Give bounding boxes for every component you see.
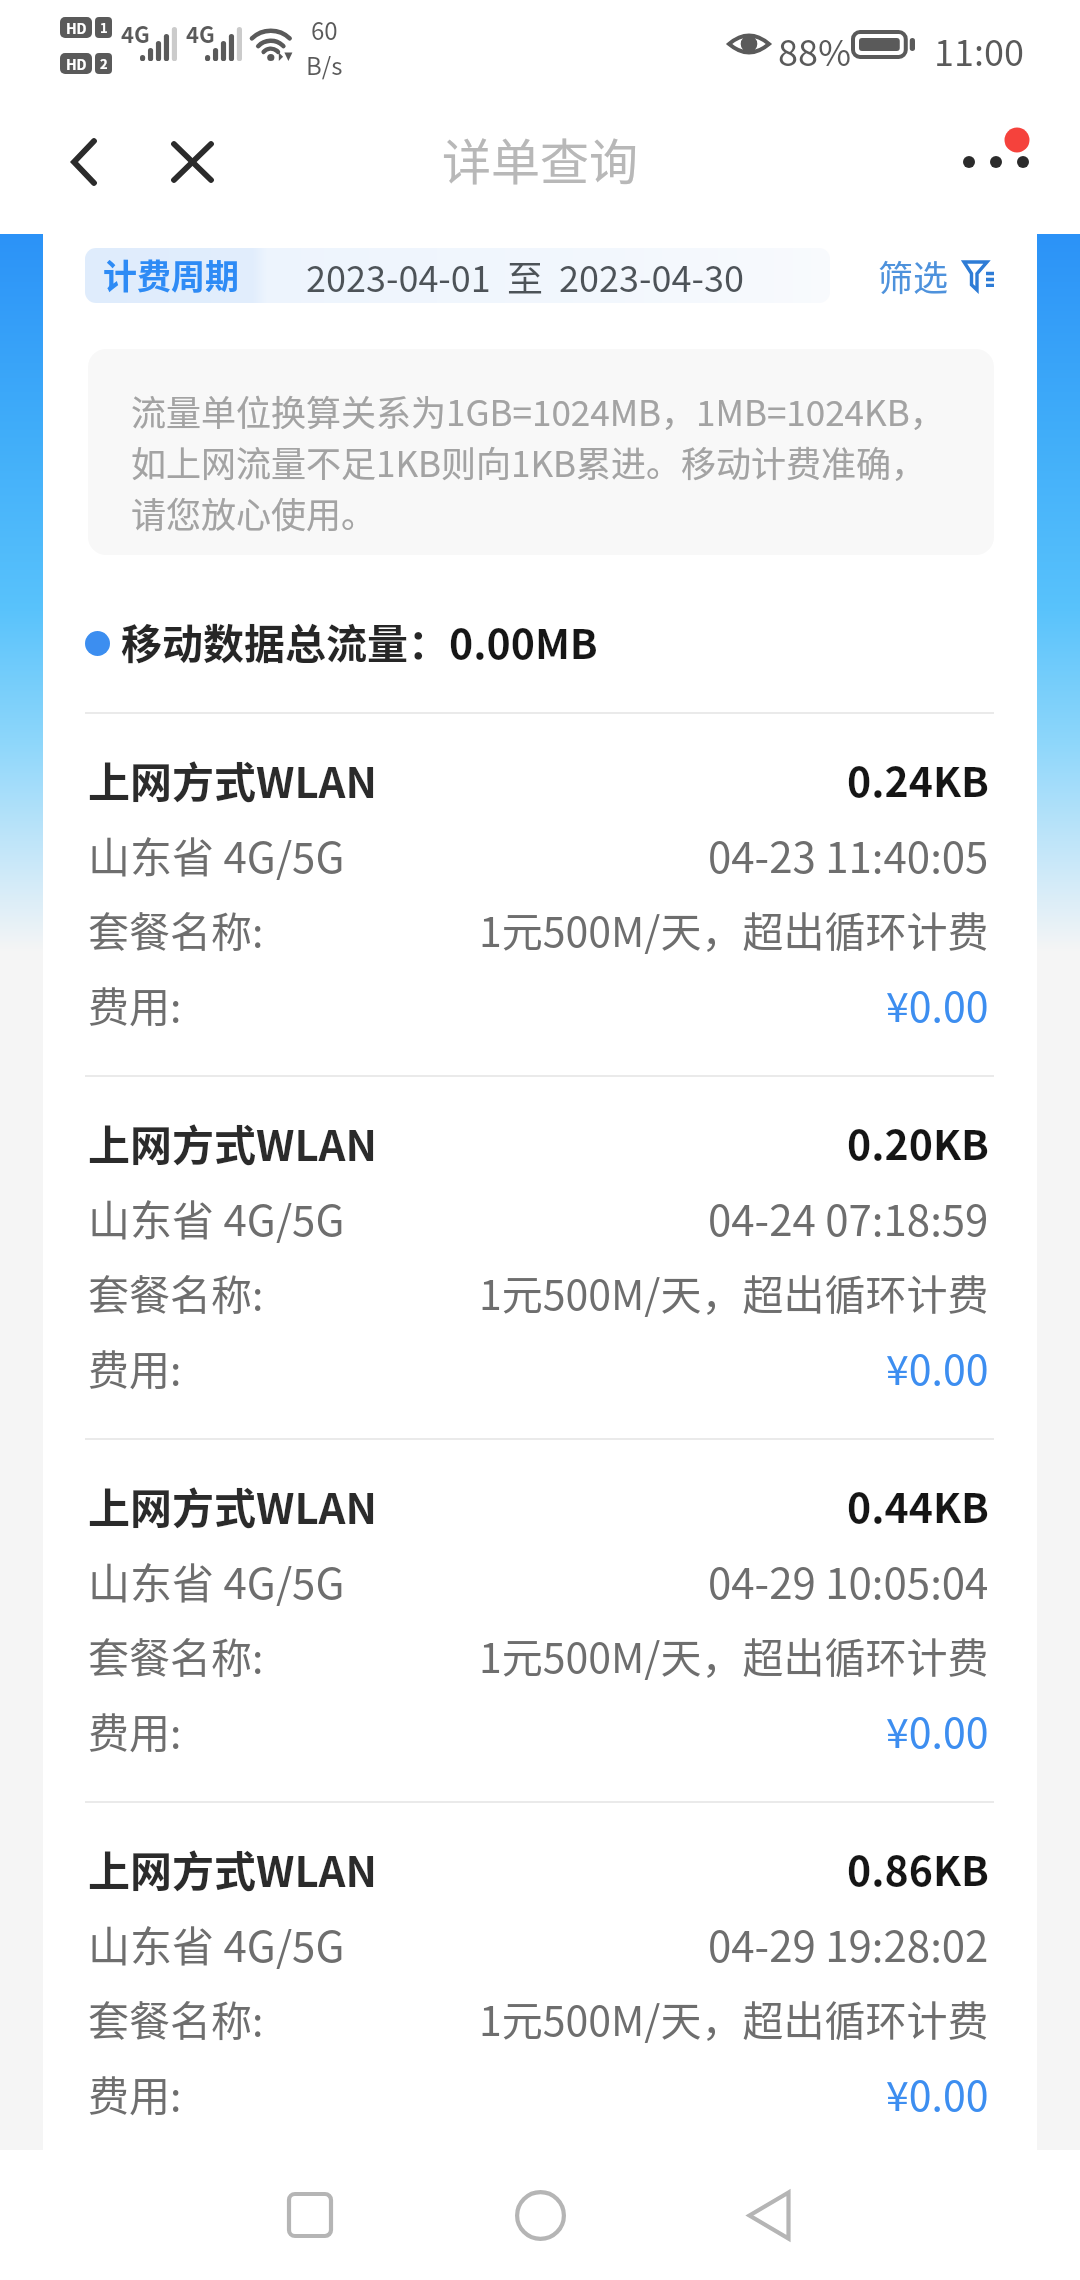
staticText: 套餐名称: bbox=[88, 1625, 264, 1681]
button[interactable]: 筛选 bbox=[878, 248, 995, 303]
staticText: 4G bbox=[186, 17, 215, 49]
staticText: 04-29 19:28:02 bbox=[708, 1913, 989, 1969]
button[interactable]: Recent apps bbox=[250, 2155, 370, 2275]
staticText: 如上网流量不足1KB则向1KB累进。移动计费准确， bbox=[131, 436, 927, 487]
staticText: 上网方式WLAN bbox=[88, 1475, 377, 1531]
staticText: 1元500M/天，超出循环计费 bbox=[479, 899, 989, 955]
staticText: ¥0.00 bbox=[886, 974, 989, 1030]
staticText: 详单查询 bbox=[442, 123, 639, 194]
staticText: 4G bbox=[121, 17, 150, 49]
staticText: 0.20KB bbox=[847, 1112, 989, 1168]
staticText: 1元500M/天，超出循环计费 bbox=[479, 1262, 989, 1318]
staticText: 1元500M/天，超出循环计费 bbox=[479, 1988, 989, 2044]
staticText: HD bbox=[66, 18, 87, 38]
staticText: 山东省 4G/5G bbox=[88, 824, 345, 880]
staticText: 0.44KB bbox=[847, 1475, 989, 1531]
staticText: 60 bbox=[311, 12, 338, 47]
button[interactable]: 上网方式WLAN bbox=[43, 1440, 1037, 1801]
staticText: 1元500M/天，超出循环计费 bbox=[479, 1625, 989, 1681]
staticText: 上网方式WLAN bbox=[88, 1838, 377, 1894]
staticText: B/s bbox=[306, 47, 343, 82]
button[interactable]: 上网方式WLAN bbox=[43, 1077, 1037, 1438]
staticText: 上网方式WLAN bbox=[88, 1112, 377, 1168]
staticText: 04-29 10:05:04 bbox=[708, 1550, 989, 1606]
staticText: 2023-04-01 至 2023-04-30 bbox=[306, 250, 744, 302]
staticText: 费用: bbox=[88, 1700, 182, 1756]
button[interactable]: Home bbox=[480, 2155, 600, 2275]
staticText: 0.24KB bbox=[847, 749, 989, 805]
staticText: ¥0.00 bbox=[886, 2063, 989, 2119]
button[interactable]: 上网方式WLAN bbox=[43, 714, 1037, 1075]
staticText: 费用: bbox=[88, 2063, 182, 2119]
staticText: 山东省 4G/5G bbox=[88, 1913, 345, 1969]
staticText: 计费周期 bbox=[103, 250, 239, 299]
staticText: ¥0.00 bbox=[886, 1337, 989, 1393]
staticText: 04-24 07:18:59 bbox=[708, 1187, 989, 1243]
staticText: 移动数据总流量： bbox=[121, 611, 449, 665]
staticText: 费用: bbox=[88, 974, 182, 1030]
staticText: 流量单位换算关系为1GB=1024MB，1MB=1024KB， bbox=[131, 385, 945, 436]
button[interactable]: Back bbox=[709, 2155, 829, 2275]
button[interactable]: Back bbox=[42, 104, 126, 220]
button[interactable]: More options bbox=[940, 104, 1054, 220]
staticText: ¥0.00 bbox=[886, 1700, 989, 1756]
staticText: 费用: bbox=[88, 1337, 182, 1393]
staticText: 套餐名称: bbox=[88, 1262, 264, 1318]
staticText: 请您放心使用。 bbox=[131, 487, 377, 538]
staticText: HD bbox=[66, 54, 87, 74]
staticText: 11:00 bbox=[934, 24, 1024, 76]
staticText: 0.86KB bbox=[847, 1838, 989, 1894]
staticText: 山东省 4G/5G bbox=[88, 1550, 345, 1606]
staticText: 1 bbox=[100, 18, 108, 37]
button[interactable]: 上网方式WLAN bbox=[43, 1803, 1037, 2150]
button[interactable]: Close bbox=[150, 104, 234, 220]
staticText: 山东省 4G/5G bbox=[88, 1187, 345, 1243]
button[interactable]: 计费周期 bbox=[85, 248, 830, 303]
staticText: 04-23 11:40:05 bbox=[708, 824, 989, 880]
staticText: 上网方式WLAN bbox=[88, 749, 377, 805]
staticText: 套餐名称: bbox=[88, 1988, 264, 2044]
staticText: 0.00MB bbox=[449, 611, 598, 665]
staticText: 2 bbox=[100, 54, 108, 73]
staticText: 88% bbox=[778, 24, 852, 76]
staticText: 套餐名称: bbox=[88, 899, 264, 955]
staticText: 筛选 bbox=[878, 250, 949, 301]
